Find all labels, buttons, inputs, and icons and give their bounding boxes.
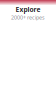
- staticText: Explore: [15, 5, 40, 14]
- staticText: 2000+ recipes: [11, 14, 45, 21]
